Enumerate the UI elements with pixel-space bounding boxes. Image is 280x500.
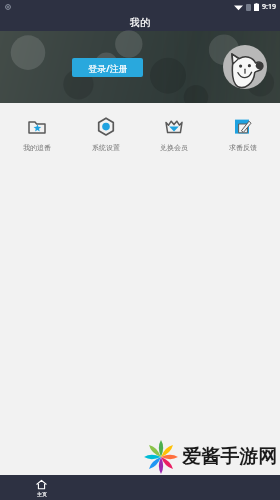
button[interactable]: Feedback bbox=[212, 114, 274, 154]
button[interactable]: Redeem membership bbox=[143, 114, 205, 154]
button[interactable]: 主页 bbox=[30, 477, 53, 499]
staticText: 登录/注册 bbox=[88, 62, 128, 74]
button[interactable]: 登录/注册 bbox=[72, 58, 143, 77]
button[interactable]: Avatar bbox=[223, 45, 267, 89]
staticText: 爱酱手游网 bbox=[182, 445, 277, 469]
staticText: 系统设置 bbox=[92, 143, 120, 152]
staticText: 9:19 bbox=[262, 2, 276, 12]
staticText: 我的追番 bbox=[23, 143, 51, 152]
staticText: 兑换会员 bbox=[160, 143, 188, 152]
staticText: 主页 bbox=[37, 491, 47, 497]
button[interactable]: Settings bbox=[75, 114, 137, 154]
staticText: 我的 bbox=[130, 16, 150, 29]
staticText: 求番反馈 bbox=[229, 143, 257, 152]
button[interactable]: My follows bbox=[6, 114, 68, 154]
